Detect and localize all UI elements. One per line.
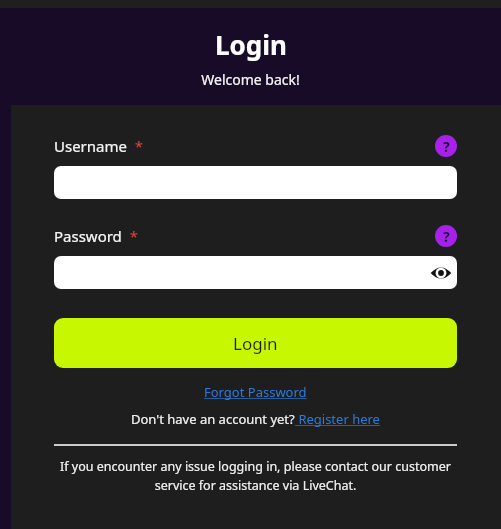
staticText: If you encounter any issue logging in, p… bbox=[54, 458, 457, 494]
staticText: Login bbox=[215, 27, 287, 62]
staticText: ? bbox=[443, 137, 450, 156]
staticText: Welcome back! bbox=[201, 70, 300, 89]
button[interactable]: Login bbox=[54, 318, 457, 368]
staticText: Forgot Password bbox=[204, 383, 307, 401]
button[interactable]: Username input bbox=[54, 166, 457, 199]
staticText: Register here bbox=[295, 410, 380, 428]
button[interactable]: Help bbox=[435, 135, 457, 157]
staticText: Username * bbox=[54, 136, 144, 156]
staticText: Login bbox=[233, 332, 278, 355]
staticText: ? bbox=[443, 227, 450, 246]
staticText: Password * bbox=[54, 226, 138, 246]
button[interactable]: Register here bbox=[295, 410, 380, 428]
staticText: Don't have an account yet? bbox=[131, 410, 295, 428]
button[interactable]: Show password bbox=[428, 260, 454, 286]
button[interactable]: Help bbox=[435, 225, 457, 247]
button[interactable]: Forgot Password bbox=[204, 383, 307, 401]
button[interactable]: Password input bbox=[54, 256, 457, 289]
